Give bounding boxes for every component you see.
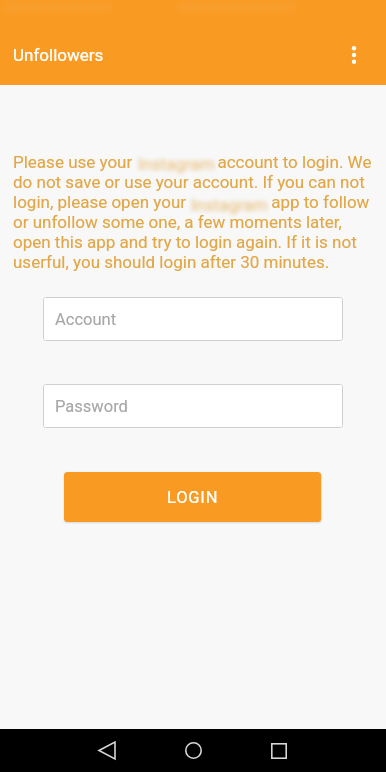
staticText: LOGIN [167, 488, 219, 507]
button[interactable]: Back [87, 729, 127, 772]
button[interactable]: Recent apps [259, 729, 299, 772]
staticText: Account [55, 310, 117, 329]
staticText: Password [55, 397, 128, 416]
button[interactable]: Password [43, 384, 343, 428]
button[interactable]: LOGIN [64, 472, 321, 522]
staticText: Instagram [191, 195, 268, 215]
button[interactable]: Account [43, 297, 343, 341]
staticText: Unfollowers [13, 45, 104, 65]
button[interactable]: Home [173, 729, 213, 772]
staticText: Please use your Instagram account to log… [13, 152, 378, 272]
button[interactable]: More options [334, 35, 374, 75]
staticText: Instagram [138, 154, 215, 174]
